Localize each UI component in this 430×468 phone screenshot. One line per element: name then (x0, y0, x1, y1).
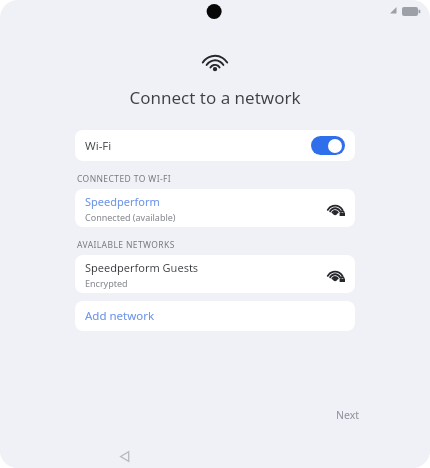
other: Secured network (327, 200, 345, 216)
staticText: Speedperform (85, 194, 160, 209)
button[interactable]: Speedperform Guests (75, 255, 355, 293)
staticText: CONNECTED TO WI-FI (77, 173, 172, 185)
button[interactable]: Wi-Fi toggle (311, 136, 345, 155)
button[interactable]: Speedperform (75, 189, 355, 227)
staticText: Encrypted (85, 277, 128, 289)
button[interactable]: Wi-Fi (75, 130, 355, 161)
staticText: Wi-Fi (85, 138, 112, 154)
staticText: Speedperform Guests (85, 260, 199, 275)
button[interactable]: Add network (75, 301, 355, 331)
staticText: AVAILABLE NETWORKS (77, 239, 175, 251)
button[interactable]: Back (112, 444, 136, 468)
button[interactable]: Next (330, 404, 366, 426)
staticText: Connect to a network (129, 86, 301, 109)
staticText: Connected (available) (85, 211, 176, 223)
staticText: Add network (85, 308, 155, 324)
staticText: Next (336, 408, 360, 422)
other: Secured network (327, 266, 345, 282)
